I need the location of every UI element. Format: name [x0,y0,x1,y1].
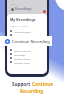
button[interactable]: Team standup [10,29,47,33]
button[interactable]: Podcast draft [10,60,47,64]
staticText: Continue [32,81,53,87]
staticText: Continue Recording [12,39,50,44]
staticText: Team standup [14,30,31,33]
staticText: Recording [20,88,44,94]
staticText: 3 files · 12 min [10,24,29,27]
staticText: Interview [14,53,25,56]
staticText: Support [12,81,32,87]
staticText: 9:41 [11,2,16,5]
staticText: My Recordings [10,17,36,22]
button[interactable]: Interview [10,52,47,56]
staticText: Lecture notes [14,57,30,60]
button[interactable]: Lecture notes [10,56,47,60]
button[interactable]: Continue Recording [0,36,52,46]
staticText: Voice memo 4 [14,49,31,52]
staticText: Recordings [15,7,32,11]
button[interactable]: Voice memo 4 [10,48,47,52]
button[interactable]: Client call [10,33,47,37]
staticText: Podcast draft [14,61,30,64]
